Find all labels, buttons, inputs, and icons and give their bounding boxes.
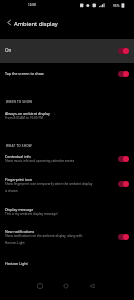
button[interactable]: Home <box>57 277 75 295</box>
staticText: This is my ambient display message! <box>5 212 58 216</box>
button[interactable]: Contextual info <box>0 150 134 168</box>
button[interactable]: Tap the screen to show <box>112 66 134 82</box>
staticText: Always-on ambient display <box>5 111 50 116</box>
button[interactable]: Always-on ambient display <box>0 107 134 124</box>
staticText: New notifications <box>5 229 35 234</box>
staticText: Display message <box>5 207 34 212</box>
button[interactable]: Horizon Light <box>0 254 134 272</box>
staticText: WHAT TO SHOW <box>6 144 32 148</box>
button[interactable]: New notifications <box>0 224 134 249</box>
staticText: On <box>5 47 12 53</box>
staticText: Fingerprint icon <box>5 177 32 182</box>
staticText: Show music info and upcoming calendar ev… <box>5 159 75 163</box>
button[interactable]: Contextual info <box>112 151 134 167</box>
button[interactable]: Navigate up <box>2 16 15 29</box>
staticText: WHEN TO SHOW <box>6 100 33 104</box>
button[interactable]: On <box>0 39 134 63</box>
staticText: Show fingerprint icon temporarily when t… <box>5 182 94 192</box>
button[interactable]: On <box>112 43 134 59</box>
button[interactable]: New notifications <box>112 229 134 245</box>
button[interactable]: Fingerprint icon <box>112 176 134 192</box>
staticText: Ambient display <box>14 20 58 28</box>
staticText: Show notifications on the ambient displa… <box>5 234 94 244</box>
button[interactable]: Fingerprint icon <box>0 171 134 197</box>
staticText: 12:58 <box>28 3 36 7</box>
staticText: Horizon Light <box>5 261 28 266</box>
staticText: 95% <box>113 4 120 8</box>
staticText: Contextual info <box>5 154 31 159</box>
button[interactable]: Tap the screen to show <box>0 63 134 85</box>
staticText: Tap the screen to show <box>5 71 44 76</box>
staticText: From 8:00 AM to 10:00 PM <box>5 116 44 120</box>
button[interactable]: Back <box>83 277 101 295</box>
button[interactable]: Recent apps <box>31 277 49 295</box>
button[interactable]: Display message <box>0 201 134 221</box>
